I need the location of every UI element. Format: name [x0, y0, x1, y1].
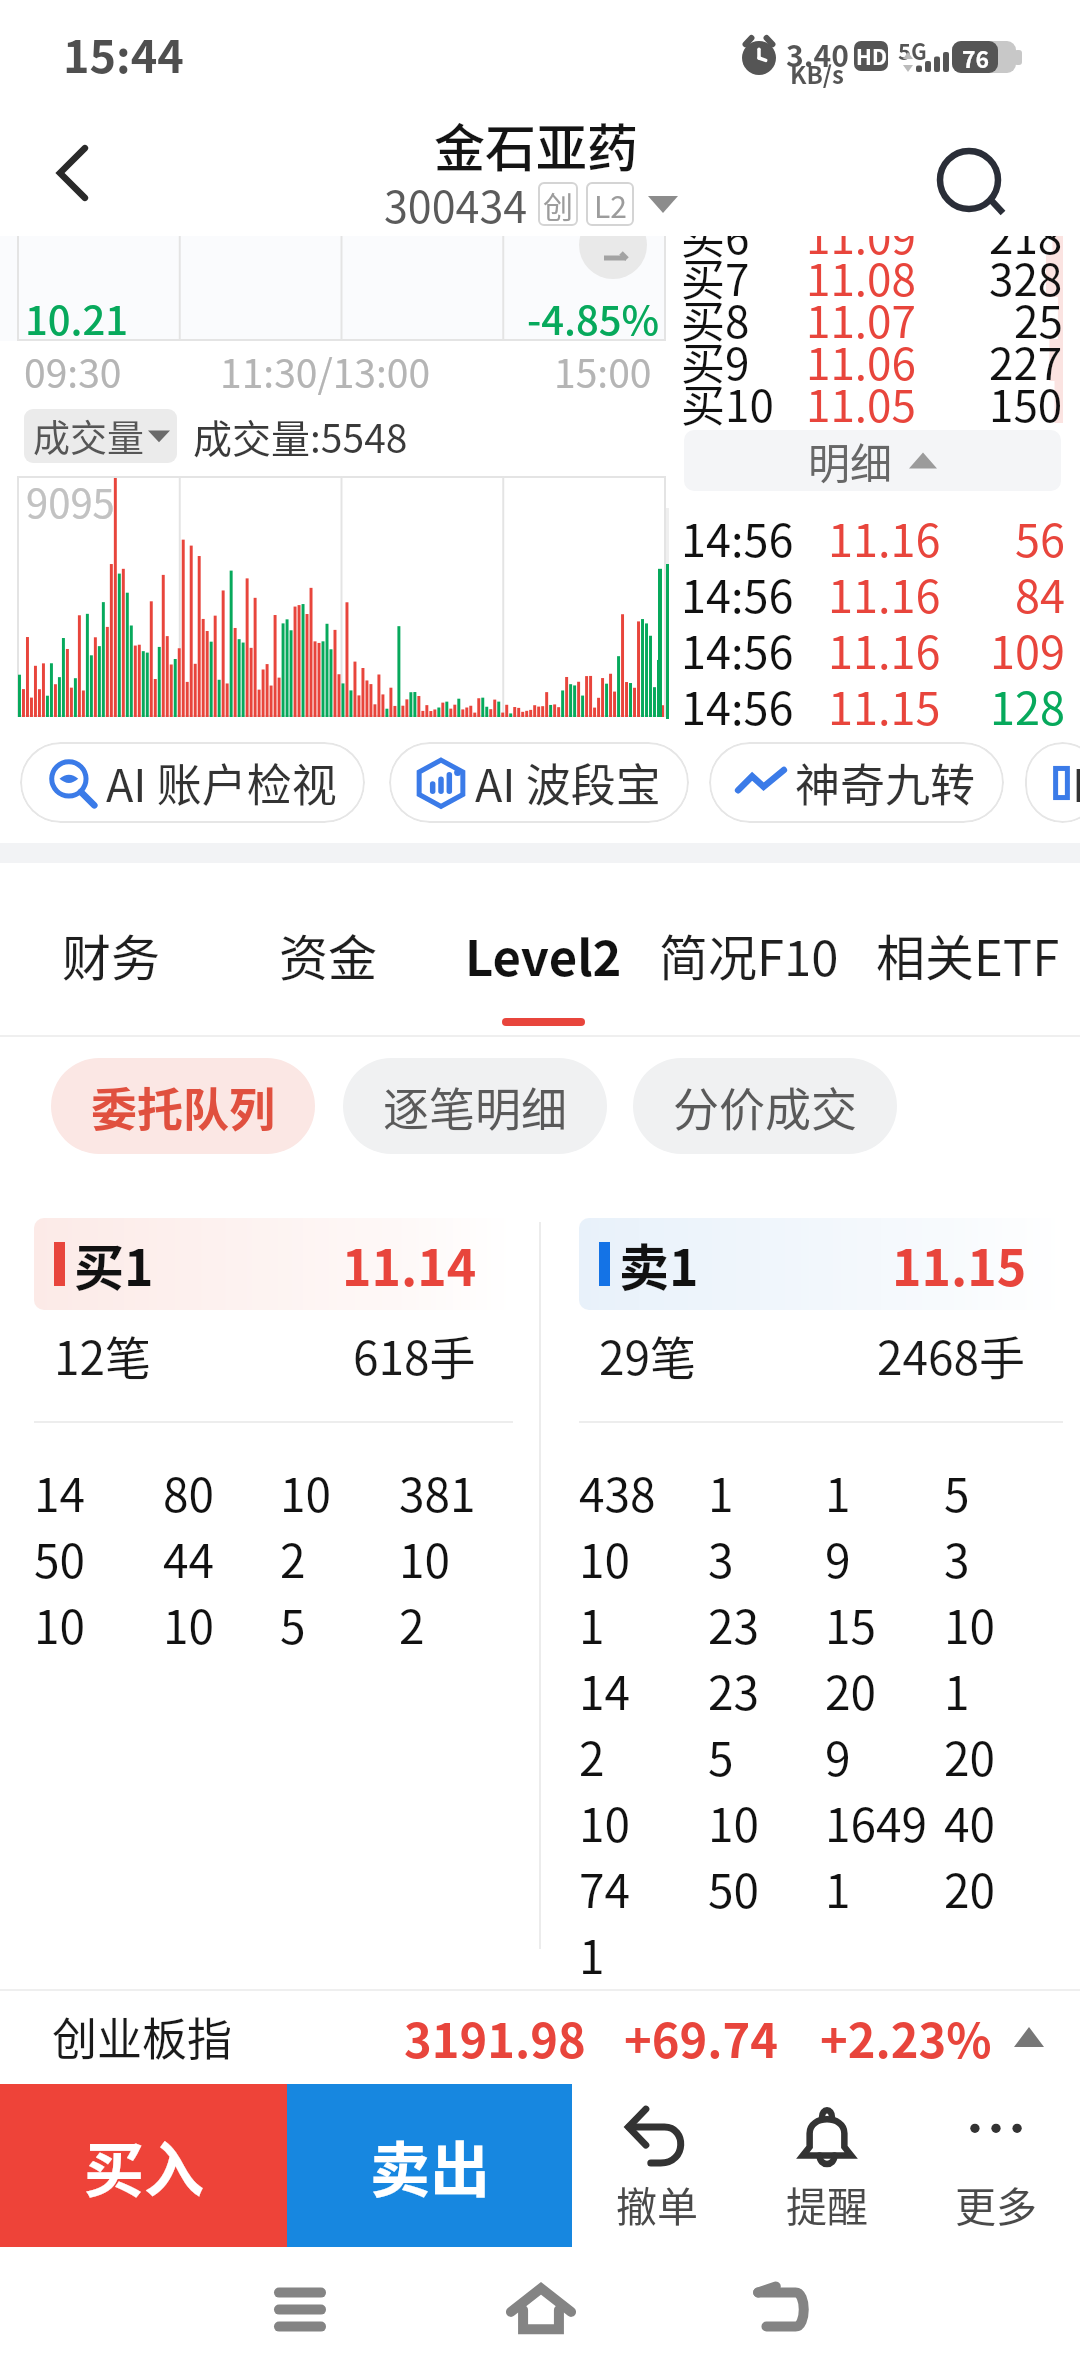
staticText: +2.23% — [820, 2003, 992, 2071]
button[interactable]: Home — [486, 2254, 596, 2364]
staticText: 14:56 — [681, 673, 794, 735]
staticText: HD — [856, 41, 887, 71]
button[interactable]: 分价成交 — [633, 1058, 897, 1154]
staticText: 10 — [579, 1525, 631, 1592]
staticText: 3191.98 — [404, 2003, 586, 2071]
staticText: 1 — [825, 1459, 851, 1526]
staticText: 1649 — [825, 1789, 928, 1856]
staticText: 11.15 — [892, 1228, 1027, 1300]
staticText: 11.16 — [828, 561, 941, 626]
staticText: 10.21 — [25, 289, 129, 347]
staticText: -4.85% — [527, 289, 660, 347]
staticText: 逐笔明细 — [383, 1073, 567, 1140]
staticText: 12笔 — [54, 1322, 152, 1389]
staticText: KB/s — [790, 56, 844, 91]
button[interactable]: Search — [930, 100, 1080, 236]
staticText: 44 — [163, 1525, 215, 1592]
staticText: 卖1 — [619, 1228, 699, 1300]
button[interactable]: D — [1025, 742, 1080, 823]
staticText: 14 — [34, 1459, 86, 1526]
button[interactable]: 资金 — [279, 863, 373, 1037]
staticText: 撤单 — [616, 2174, 698, 2233]
staticText: 50 — [708, 1855, 760, 1922]
staticText: 成交量:5548 — [193, 408, 408, 464]
staticText: 买10 — [681, 371, 774, 435]
button[interactable]: 财务 — [62, 863, 156, 1037]
staticText: 14:56 — [681, 617, 794, 682]
staticText: 3.40 — [786, 32, 849, 75]
staticText: 2 — [579, 1723, 605, 1790]
staticText: 卖出 — [370, 2122, 490, 2209]
staticText: 29笔 — [599, 1322, 697, 1389]
staticText: 11.08 — [806, 245, 916, 309]
staticText: 金石亚药 — [434, 108, 639, 182]
staticText: 618手 — [353, 1322, 476, 1389]
staticText: 相关ETF — [876, 919, 1060, 990]
staticText: 11.15 — [828, 673, 941, 735]
button[interactable]: 委托队列 — [51, 1058, 315, 1154]
staticText: 40 — [944, 1789, 996, 1856]
staticText: 25 — [1014, 287, 1063, 351]
staticText: 委托队列 — [91, 1073, 275, 1140]
staticText: 1 — [579, 1591, 605, 1658]
staticText: 10 — [34, 1591, 86, 1658]
staticText: 227 — [989, 329, 1063, 393]
button[interactable]: 成交量 — [24, 409, 177, 463]
staticText: 80 — [163, 1459, 215, 1526]
button[interactable]: AI 波段宝 — [389, 742, 689, 823]
button[interactable]: 提醒 — [742, 2084, 911, 2247]
staticText: 简况F10 — [659, 919, 839, 990]
staticText: 15 — [825, 1591, 877, 1658]
staticText: 11.05 — [806, 371, 916, 435]
staticText: 分价成交 — [673, 1073, 857, 1140]
staticText: 1 — [944, 1657, 970, 1724]
button[interactable]: 相关ETF — [876, 863, 1062, 1037]
staticText: 3 — [708, 1525, 734, 1592]
staticText: 76 — [962, 41, 990, 73]
staticText: 218 — [989, 236, 1063, 267]
button[interactable]: 神奇九转 — [709, 742, 1004, 823]
staticText: 56 — [1015, 505, 1065, 570]
staticText: 5 — [944, 1459, 970, 1526]
staticText: Level2 — [465, 919, 621, 990]
button[interactable]: 卖出 — [287, 2084, 572, 2247]
staticText: 1 — [708, 1459, 734, 1526]
staticText: 11.16 — [828, 617, 941, 682]
button[interactable]: 简况F10 — [659, 863, 846, 1037]
staticText: 9 — [825, 1525, 851, 1592]
button[interactable]: Recents — [245, 2254, 355, 2364]
staticText: 15:44 — [63, 21, 184, 86]
button[interactable]: 买1 — [34, 1218, 513, 1993]
staticText: 买1 — [74, 1228, 154, 1300]
staticText: 11.06 — [806, 329, 916, 393]
staticText: 23 — [708, 1591, 760, 1658]
button[interactable]: AI 账户检视 — [20, 742, 365, 823]
button[interactable]: 买入 — [0, 2084, 287, 2247]
staticText: 328 — [989, 245, 1063, 309]
button[interactable]: 逐笔明细 — [343, 1058, 607, 1154]
staticText: 5 — [280, 1591, 306, 1658]
staticText: 11.07 — [806, 287, 916, 351]
staticText: 11.16 — [828, 505, 941, 570]
staticText: 438 — [579, 1459, 656, 1526]
staticText: 神奇九转 — [795, 750, 976, 815]
button[interactable]: 14:56 — [665, 508, 1080, 735]
staticText: AI 波段宝 — [475, 750, 661, 815]
button[interactable]: 买6 — [672, 236, 1080, 423]
staticText: +69.74 — [624, 2003, 778, 2071]
button[interactable]: Back — [0, 100, 140, 236]
staticText: 1 — [825, 1855, 851, 1922]
staticText: 9 — [825, 1723, 851, 1790]
staticText: 1 — [579, 1921, 605, 1988]
button[interactable]: Level2 — [465, 863, 621, 1037]
staticText: 14:56 — [681, 505, 794, 570]
staticText: 74 — [579, 1855, 631, 1922]
button[interactable]: 撤单 — [572, 2084, 742, 2247]
staticText: 2 — [399, 1591, 425, 1658]
button[interactable]: Back — [726, 2254, 836, 2364]
button[interactable]: 更多 — [911, 2084, 1080, 2247]
button[interactable]: 卖1 — [579, 1218, 1063, 1993]
staticText: AI 账户检视 — [106, 750, 337, 815]
button[interactable]: 明细 — [684, 430, 1061, 491]
staticText: 5G — [898, 34, 927, 66]
